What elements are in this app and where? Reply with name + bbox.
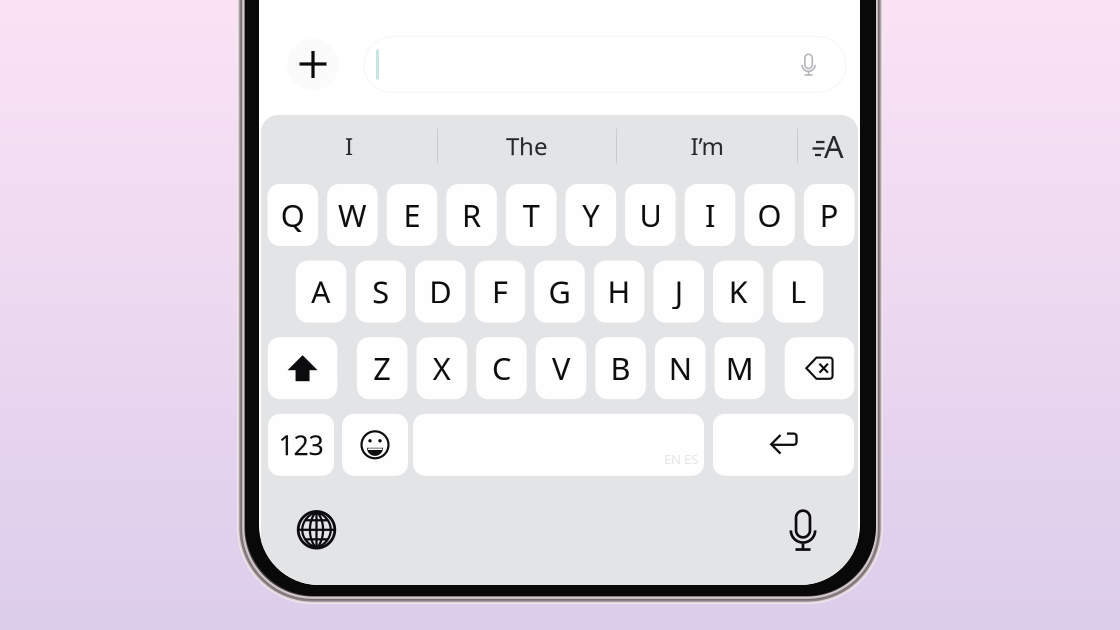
button[interactable]: H — [594, 261, 644, 323]
staticText: Q — [281, 195, 305, 235]
button[interactable]: Emoji — [342, 414, 408, 476]
staticText: The — [506, 130, 548, 162]
button[interactable]: F — [475, 261, 525, 323]
button[interactable]: M — [714, 337, 765, 399]
staticText: EN ES — [664, 450, 698, 468]
staticText: D — [429, 271, 451, 312]
button[interactable]: C — [476, 337, 527, 399]
button[interactable]: X — [416, 337, 467, 399]
button[interactable]: Text formatting — [798, 121, 858, 171]
button[interactable]: I — [685, 184, 735, 246]
button[interactable]: Next keyboard — [261, 494, 372, 566]
button[interactable]: S — [355, 261, 406, 323]
staticText: E — [403, 195, 420, 235]
button[interactable]: E — [387, 184, 437, 246]
staticText: N — [669, 348, 692, 388]
button[interactable]: Y — [565, 184, 616, 246]
staticText: C — [492, 348, 511, 388]
button[interactable]: Shift — [268, 337, 337, 399]
button[interactable]: D — [415, 261, 466, 323]
staticText: X — [433, 348, 451, 388]
button[interactable]: G — [534, 261, 585, 323]
button[interactable]: 123 — [268, 414, 334, 476]
button[interactable]: A — [296, 261, 346, 323]
button[interactable]: Add media — [286, 37, 340, 91]
staticText: Y — [582, 195, 599, 235]
staticText: A — [311, 271, 331, 312]
staticText: T — [523, 195, 540, 235]
staticText: I’m — [690, 130, 723, 162]
button[interactable]: Delete — [785, 337, 854, 399]
staticText: K — [729, 271, 748, 312]
button[interactable]: J — [653, 261, 704, 323]
staticText: V — [552, 348, 570, 388]
staticText: W — [338, 195, 367, 235]
button[interactable]: O — [744, 184, 795, 246]
staticText: H — [608, 271, 631, 312]
button[interactable]: P — [804, 184, 854, 246]
staticText: S — [372, 271, 389, 312]
staticText: I — [345, 130, 353, 162]
button[interactable]: I — [261, 121, 437, 171]
button[interactable]: Q — [267, 184, 318, 246]
button[interactable]: Dictation — [748, 494, 858, 566]
staticText: O — [758, 195, 782, 235]
button[interactable]: U — [625, 184, 676, 246]
button[interactable]: B — [595, 337, 646, 399]
staticText: P — [820, 195, 839, 235]
button[interactable]: I’m — [617, 121, 797, 171]
staticText: I — [705, 195, 715, 235]
staticText: R — [462, 195, 481, 235]
button[interactable]: Message field — [364, 36, 846, 92]
button[interactable]: K — [713, 261, 764, 323]
staticText: Z — [373, 348, 391, 388]
button[interactable]: T — [506, 184, 556, 246]
staticText: 123 — [278, 427, 323, 462]
button[interactable]: Z — [357, 337, 407, 399]
staticText: A — [824, 126, 844, 166]
button[interactable]: N — [655, 337, 705, 399]
staticText: F — [492, 271, 508, 312]
staticText: G — [548, 271, 570, 312]
button[interactable]: The — [438, 121, 616, 171]
staticText: B — [611, 348, 631, 388]
button[interactable]: R — [446, 184, 497, 246]
button[interactable]: Return — [713, 414, 854, 476]
staticText: J — [675, 271, 683, 312]
button[interactable]: V — [536, 337, 586, 399]
staticText: L — [790, 271, 806, 312]
staticText: U — [639, 195, 661, 235]
button[interactable]: L — [773, 261, 823, 323]
staticText: M — [726, 348, 754, 388]
button[interactable]: W — [327, 184, 378, 246]
